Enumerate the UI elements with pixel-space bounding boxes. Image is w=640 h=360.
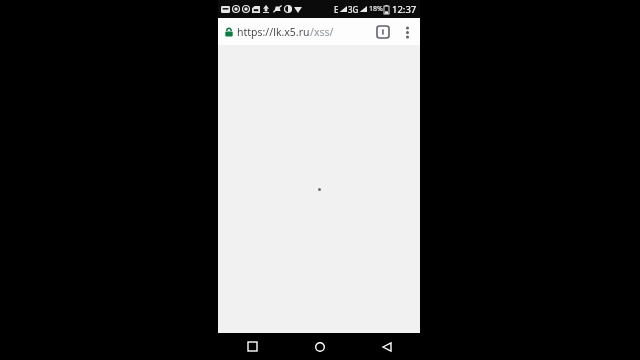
button[interactable]: Recent apps (218, 333, 286, 360)
staticText: 3G (348, 4, 359, 15)
staticText: E (334, 4, 339, 15)
staticText: /xss/zhr_ess_r (310, 25, 370, 39)
staticText: 12:37 (392, 3, 417, 16)
button[interactable]: More options (396, 21, 418, 43)
button[interactable]: Switch tabs (370, 19, 396, 45)
button[interactable]: https://lk.x5.ru (218, 18, 370, 45)
button[interactable]: Home (286, 333, 353, 360)
button[interactable]: Back (353, 333, 420, 360)
staticText: https://lk.x5.ru (237, 25, 310, 39)
staticText: 18% (369, 4, 383, 14)
